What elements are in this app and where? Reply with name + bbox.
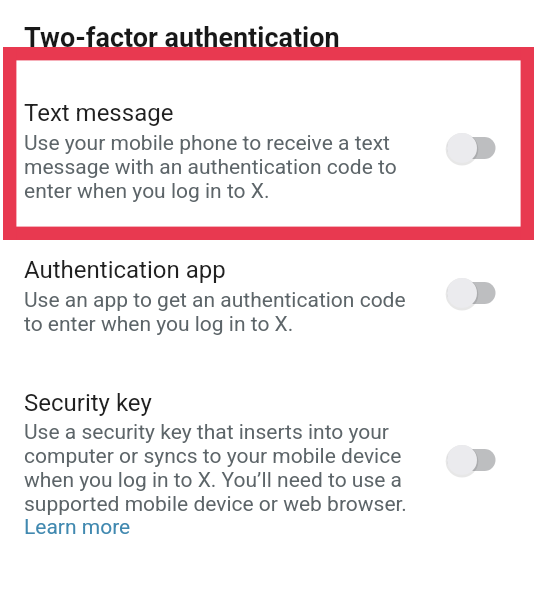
staticText: Use your mobile phone to receive a text … (24, 131, 397, 203)
button[interactable]: Security key toggle (434, 438, 510, 482)
staticText: Authentication app (24, 256, 226, 284)
button[interactable]: Authentication app (0, 256, 535, 332)
staticText: Text message (24, 99, 174, 127)
staticText: Use a security key that inserts into you… (24, 420, 407, 516)
staticText: Security key (24, 389, 152, 417)
staticText: Two-factor authentication (24, 22, 340, 54)
staticText: Learn more (24, 515, 131, 539)
button[interactable]: Security key (0, 389, 535, 513)
button[interactable]: Learn more (24, 515, 131, 539)
staticText: Use an app to get an authentication code… (24, 288, 406, 336)
button[interactable]: Text message (0, 99, 535, 199)
button[interactable]: Text message toggle (434, 126, 510, 170)
button[interactable]: Authentication app toggle (434, 271, 510, 315)
